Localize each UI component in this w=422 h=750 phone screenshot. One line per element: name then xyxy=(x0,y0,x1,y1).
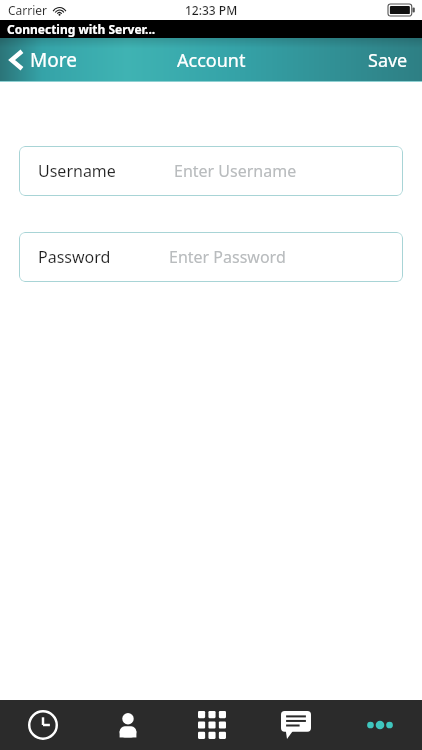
button[interactable]: Password xyxy=(19,232,403,282)
button[interactable]: More xyxy=(338,700,422,750)
staticText: Connecting with Server... xyxy=(7,21,156,37)
button[interactable]: Username xyxy=(19,146,403,196)
button[interactable]: Keypad xyxy=(170,700,254,750)
button[interactable]: Recents xyxy=(0,700,85,750)
staticText: Enter Username xyxy=(174,160,297,182)
button[interactable]: Save xyxy=(354,42,422,79)
staticText: 12:33 PM xyxy=(185,2,238,18)
button[interactable]: Messages xyxy=(254,700,338,750)
staticText: Account xyxy=(177,48,246,73)
button[interactable]: More xyxy=(0,43,91,77)
staticText: Carrier xyxy=(8,2,48,18)
staticText: Enter Password xyxy=(169,246,286,268)
staticText: Username xyxy=(38,160,116,182)
staticText: More xyxy=(30,47,77,73)
button[interactable]: Contacts xyxy=(85,700,170,750)
staticText: Password xyxy=(38,246,111,268)
staticText: Save xyxy=(368,48,408,73)
